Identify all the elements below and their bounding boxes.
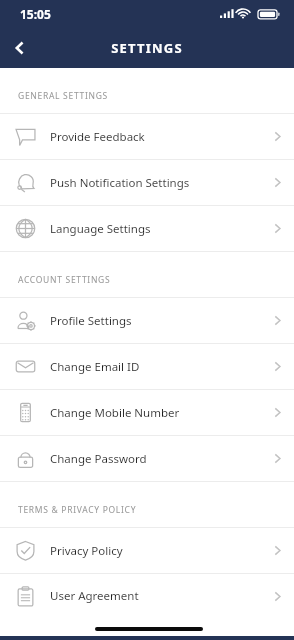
staticText: ACCOUNT SETTINGS <box>18 274 111 286</box>
button[interactable]: Change Email ID <box>0 344 294 390</box>
staticText: Language Settings <box>50 221 260 237</box>
button[interactable]: Profile Settings <box>0 298 294 344</box>
staticText: Change Password <box>50 451 260 467</box>
staticText: GENERAL SETTINGS <box>18 90 108 102</box>
button[interactable]: Provide Feedback <box>0 114 294 160</box>
button[interactable]: Language Settings <box>0 206 294 252</box>
staticText: TERMS & PRIVACY POLICY <box>18 504 137 516</box>
staticText: 15:05 <box>20 6 51 22</box>
button[interactable]: Push Notification Settings <box>0 160 294 206</box>
staticText: SETTINGS <box>111 39 183 57</box>
staticText: Provide Feedback <box>50 129 260 145</box>
button[interactable]: User Agreement <box>0 574 294 618</box>
button[interactable]: Change Mobile Number <box>0 390 294 436</box>
staticText: Push Notification Settings <box>50 175 260 191</box>
button[interactable]: Back <box>0 28 40 68</box>
staticText: User Agreement <box>50 588 260 604</box>
staticText: Change Mobile Number <box>50 405 260 421</box>
staticText: Change Email ID <box>50 359 260 375</box>
button[interactable]: Change Password <box>0 436 294 482</box>
staticText: Profile Settings <box>50 313 260 329</box>
button[interactable]: Privacy Policy <box>0 528 294 574</box>
staticText: Privacy Policy <box>50 543 260 559</box>
